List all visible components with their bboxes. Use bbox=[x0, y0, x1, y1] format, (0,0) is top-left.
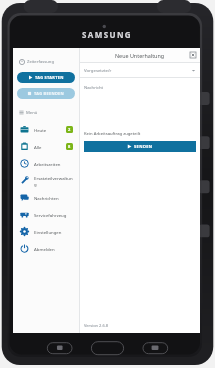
button[interactable]: Heute bbox=[17, 121, 75, 138]
button[interactable]: Nachrichten bbox=[17, 189, 75, 206]
staticText: SENDEN bbox=[134, 144, 153, 149]
staticText: Alle bbox=[34, 144, 42, 150]
button[interactable]: Home bbox=[92, 333, 124, 368]
button[interactable]: Abmelden bbox=[17, 240, 75, 257]
button[interactable]: Servicefahrzeug bbox=[17, 206, 75, 223]
staticText: Kein Arbeitsauftrag zugeteilt bbox=[84, 131, 141, 137]
staticText: SAMSUNG bbox=[82, 29, 133, 40]
staticText: Menü bbox=[26, 110, 38, 116]
staticText: Servicefahrzeug bbox=[34, 212, 67, 218]
button[interactable]: Zeiterfassung bbox=[17, 57, 75, 67]
staticText: Heute bbox=[34, 127, 47, 133]
button[interactable]: Ersatzteilverwaltung bbox=[17, 172, 75, 189]
staticText: Ersatzteilverwaltung bbox=[34, 175, 73, 187]
button[interactable]: Alle bbox=[17, 138, 75, 155]
staticText: Abmelden bbox=[34, 246, 55, 252]
button[interactable]: Arbeitszeiten bbox=[17, 155, 75, 172]
button[interactable]: TAG BEENDEN bbox=[17, 88, 75, 99]
staticText: Einstellungen bbox=[34, 229, 62, 235]
staticText: Zeiterfassung bbox=[27, 59, 54, 65]
staticText: Neue Unterhaltung bbox=[115, 52, 165, 59]
staticText: 2 bbox=[68, 127, 71, 132]
button[interactable]: Einstellungen bbox=[17, 223, 75, 240]
button[interactable]: Back bbox=[142, 333, 170, 368]
staticText: TAG STARTEN bbox=[35, 75, 64, 80]
button[interactable]: Recents bbox=[46, 333, 74, 368]
staticText: Nachricht bbox=[84, 85, 104, 91]
staticText: Arbeitszeiten bbox=[34, 161, 61, 167]
button[interactable]: Vorgesetzte/r bbox=[80, 63, 200, 77]
button[interactable]: TAG STARTEN bbox=[17, 72, 75, 83]
staticText: 8 bbox=[68, 144, 71, 149]
staticText: Nachrichten bbox=[34, 195, 59, 201]
staticText: Vorgesetzte/r bbox=[84, 67, 112, 73]
button[interactable]: Schließen bbox=[189, 51, 197, 59]
staticText: Version 2.6.8 bbox=[84, 323, 109, 328]
staticText: TAG BEENDEN bbox=[34, 91, 65, 96]
button[interactable]: SENDEN bbox=[84, 141, 196, 152]
